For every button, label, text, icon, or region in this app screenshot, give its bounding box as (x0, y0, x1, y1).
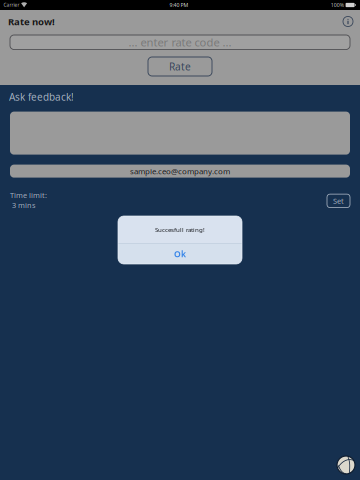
staticText: 3 mins (10, 200, 36, 210)
button[interactable]: Feedback text (10, 112, 350, 155)
staticText: Succesfull rating! (155, 225, 205, 234)
button[interactable]: Email address (10, 165, 350, 178)
button[interactable]: Set time limit (327, 190, 350, 208)
button[interactable]: ... enter rate code ... (10, 35, 350, 49)
staticText: 9:40 PM (169, 1, 188, 9)
button[interactable]: App badge (337, 456, 355, 474)
button[interactable]: Ok (118, 244, 242, 264)
staticText: Time limit: (10, 190, 47, 200)
staticText: sample.ceo@company.com (130, 166, 230, 176)
staticText: Carrier (3, 2, 19, 8)
staticText: 100% (331, 1, 344, 9)
staticText: Rate (169, 60, 191, 73)
staticText: Rate now! (8, 15, 55, 28)
staticText: Ask feedback! (9, 90, 74, 104)
staticText: Set (333, 196, 344, 206)
button[interactable]: Rate (148, 57, 212, 76)
staticText: ... enter rate code ... (128, 35, 231, 50)
staticText: Ok (174, 248, 186, 260)
button[interactable]: Info (342, 15, 354, 27)
